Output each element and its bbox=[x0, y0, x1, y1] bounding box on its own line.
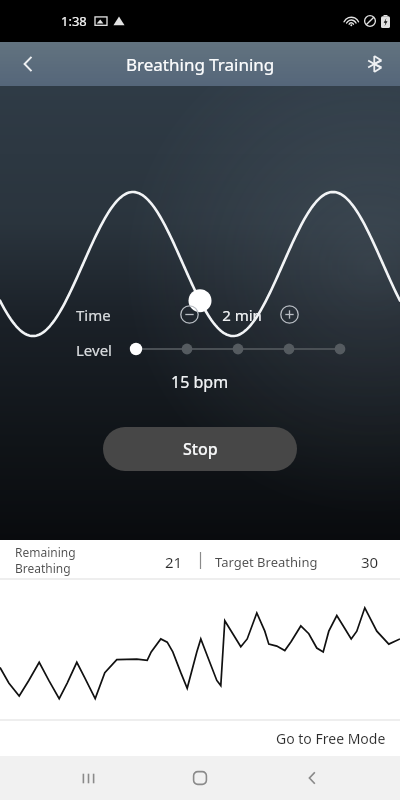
button[interactable]: Level slider bbox=[124, 334, 352, 364]
staticText: Breathing bbox=[15, 560, 71, 576]
staticText: 30 bbox=[361, 552, 379, 572]
staticText: Level bbox=[76, 340, 112, 360]
button[interactable]: Stop bbox=[103, 427, 297, 471]
staticText: Go to Free Mode bbox=[276, 729, 386, 748]
staticText: Target Breathing bbox=[215, 553, 318, 571]
button[interactable]: Back bbox=[282, 756, 342, 800]
staticText: Time bbox=[76, 305, 111, 325]
button[interactable]: Go to Free Mode bbox=[276, 729, 386, 748]
staticText: 1:38 bbox=[61, 12, 87, 30]
staticText: 21 bbox=[165, 552, 183, 572]
button[interactable]: Decrease time bbox=[176, 301, 202, 327]
button[interactable]: Back bbox=[0, 42, 56, 86]
button[interactable]: Bluetooth bbox=[350, 42, 400, 86]
staticText: Breathing Training bbox=[126, 53, 275, 76]
staticText: Stop bbox=[183, 438, 218, 460]
button[interactable]: Home bbox=[170, 756, 230, 800]
staticText: 2 min bbox=[222, 305, 262, 325]
button[interactable]: Recent apps bbox=[58, 756, 118, 800]
button[interactable]: Increase time bbox=[276, 301, 302, 327]
staticText: 15 bpm bbox=[171, 371, 229, 393]
staticText: Remaining bbox=[15, 544, 76, 560]
